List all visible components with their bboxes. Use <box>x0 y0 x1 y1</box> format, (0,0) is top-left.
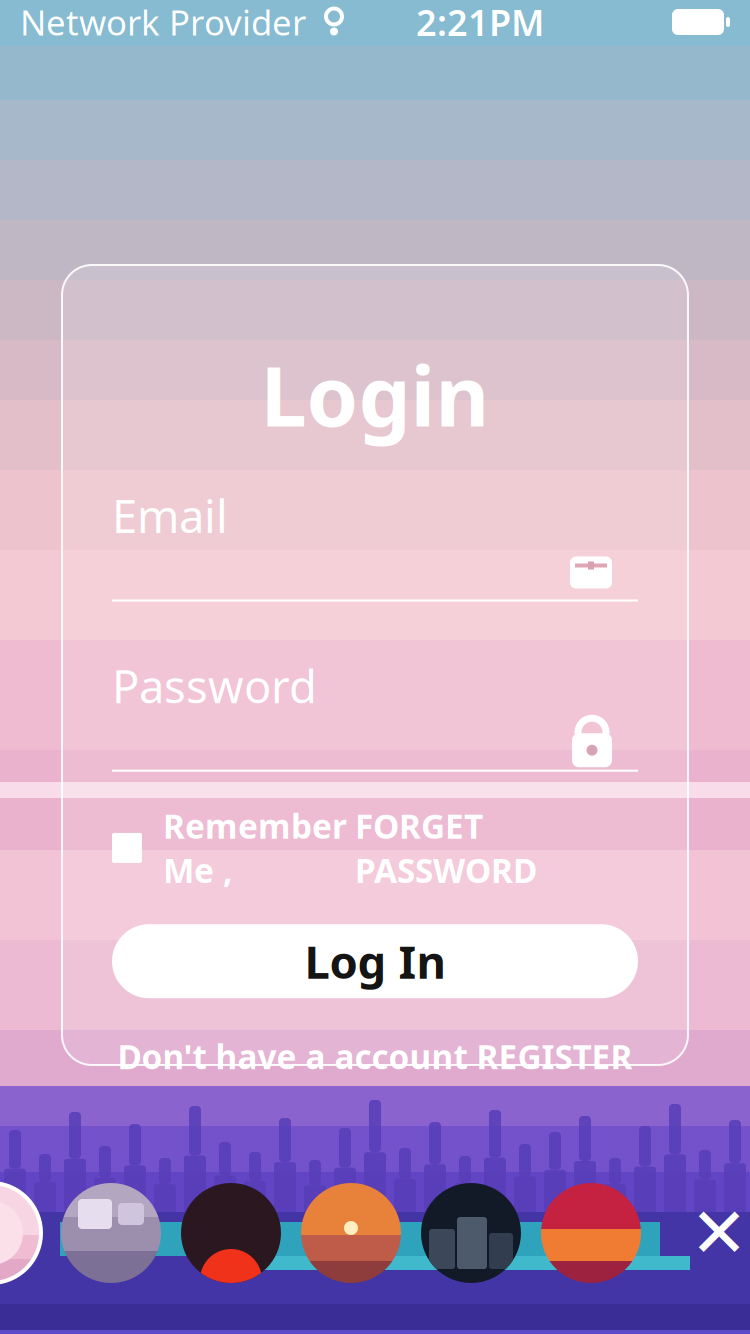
staticText: FORGET PASSWORD <box>355 804 537 892</box>
button[interactable]: Remember Me , <box>163 804 347 892</box>
staticText: Login <box>260 339 489 449</box>
staticText: Password <box>112 655 317 716</box>
button[interactable]: Night mountains wallpaper <box>421 1183 521 1283</box>
button[interactable]: Dark sun wallpaper <box>181 1183 281 1283</box>
button[interactable]: Sunset wallpaper <box>301 1183 401 1283</box>
button[interactable]: Don't have a account REGISTER <box>117 1034 632 1078</box>
staticText: Don't have a account REGISTER <box>117 1034 632 1078</box>
staticText: Remember Me , <box>163 804 347 892</box>
staticText: Log In <box>304 931 445 991</box>
button[interactable]: Log In <box>112 924 638 998</box>
button[interactable]: Red sky wallpaper <box>541 1183 641 1283</box>
staticText: 2:21PM <box>416 0 544 46</box>
staticText: ✕ <box>690 1194 748 1272</box>
button[interactable]: Mountain wallpaper <box>61 1183 161 1283</box>
button[interactable]: Pink wallpaper, selected <box>0 1183 41 1283</box>
staticText: Email <box>112 485 228 545</box>
button[interactable]: FORGET PASSWORD <box>355 804 537 892</box>
staticText: Network Provider <box>20 0 306 45</box>
button[interactable]: Close <box>689 1203 749 1263</box>
